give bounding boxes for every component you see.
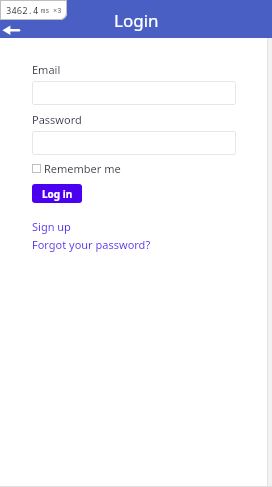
staticText: Log in: [42, 187, 73, 201]
button[interactable]: Log in: [32, 184, 82, 203]
staticText: Login: [114, 9, 159, 32]
button[interactable]: [32, 81, 236, 105]
button[interactable]: Back: [0, 22, 20, 38]
button[interactable]: Forgot your password?: [32, 237, 151, 252]
staticText: Email: [32, 62, 61, 77]
staticText: ×3: [53, 6, 62, 16]
button[interactable]: Sign up: [32, 219, 71, 234]
button[interactable]: Remember me: [32, 161, 121, 176]
staticText: Password: [32, 112, 82, 127]
staticText: Remember me: [44, 161, 121, 176]
staticText: 3462.4: [6, 4, 39, 16]
button[interactable]: [32, 131, 236, 155]
staticText: ms: [41, 6, 50, 16]
